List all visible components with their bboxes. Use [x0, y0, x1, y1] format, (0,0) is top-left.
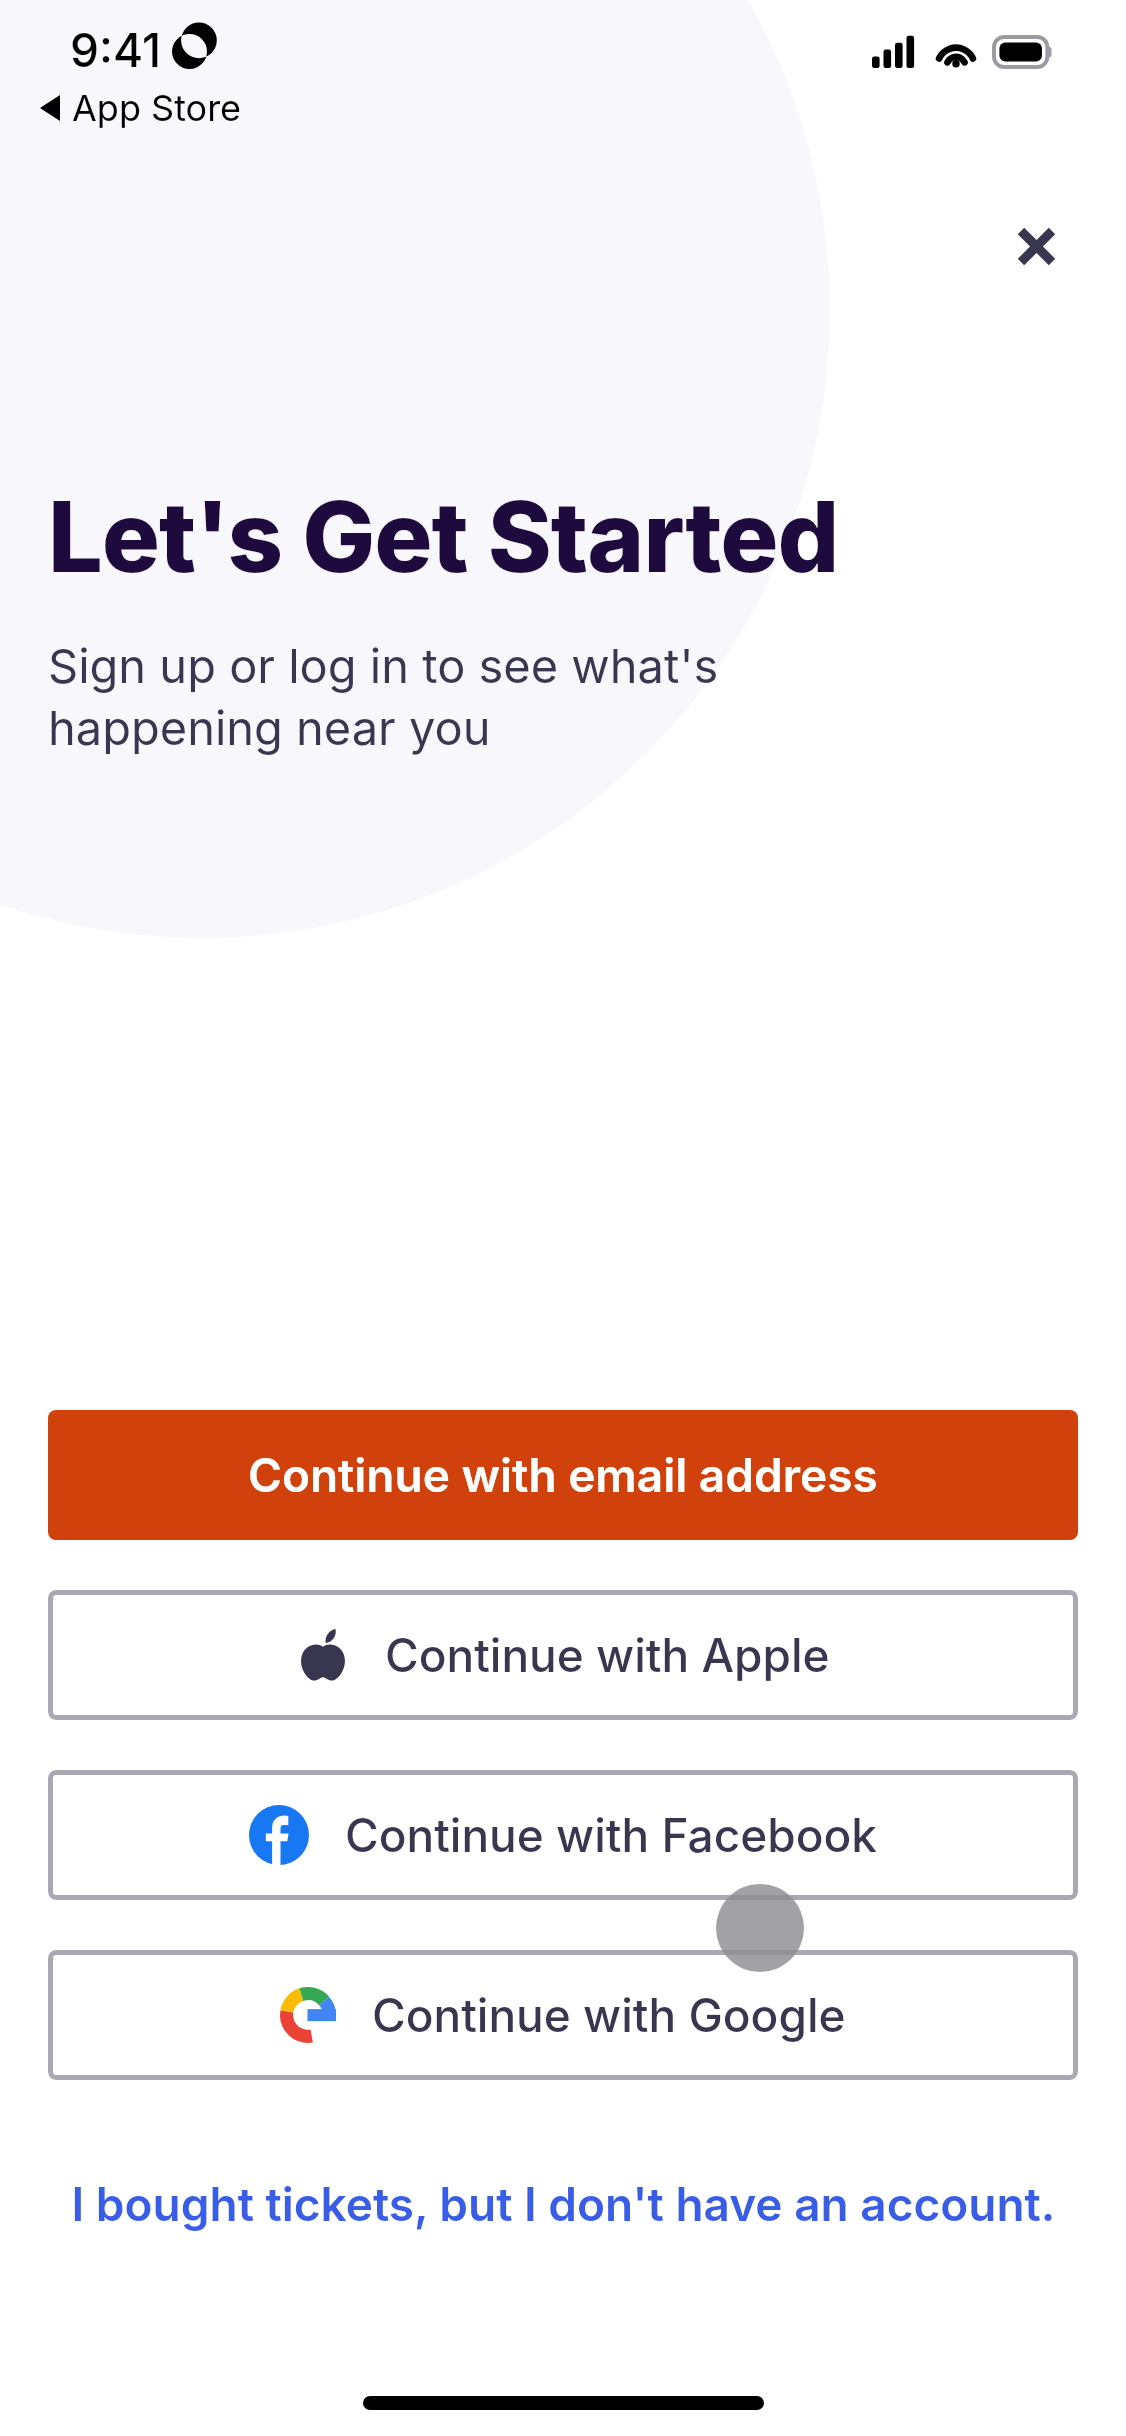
button[interactable]: I bought tickets, but I don't have an ac…	[47, 2168, 1080, 2240]
staticText: Continue with email address	[248, 1447, 878, 1503]
button[interactable]: Continue with Google	[48, 1950, 1078, 2080]
staticText: App Store	[72, 86, 242, 130]
staticText: Continue with Google	[372, 1987, 846, 2043]
button[interactable]: Continue with Facebook	[48, 1770, 1078, 1900]
button[interactable]: Close	[992, 202, 1080, 290]
staticText: 9:41	[70, 22, 162, 78]
staticText: Continue with Apple	[385, 1627, 830, 1683]
staticText: Let's Get Started	[48, 478, 839, 595]
button[interactable]: Continue with email address	[48, 1410, 1078, 1540]
staticText: Continue with Facebook	[345, 1807, 877, 1863]
button[interactable]: Continue with Apple	[48, 1590, 1078, 1720]
staticText: Sign up or log in to see what's happenin…	[48, 637, 928, 756]
